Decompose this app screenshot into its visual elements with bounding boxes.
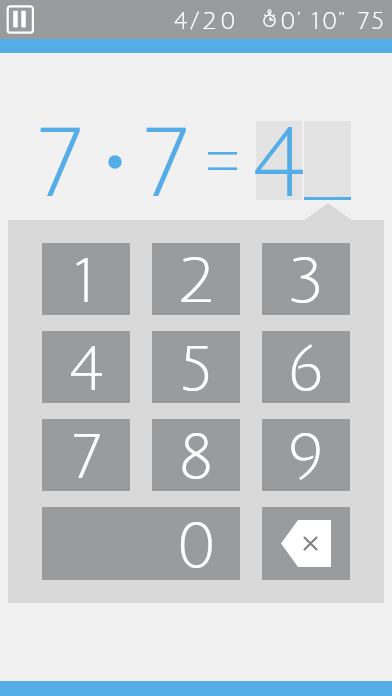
staticText: 7 (34, 113, 83, 218)
staticText: 4/20 (174, 8, 239, 34)
staticText: 1 (76, 248, 96, 316)
staticText: 3 (288, 248, 325, 316)
button[interactable]: 4 (42, 331, 130, 403)
staticText: 7 (140, 113, 189, 218)
button[interactable]: 9 (262, 419, 350, 491)
button[interactable]: Backspace (262, 507, 350, 580)
staticText: 7 (70, 424, 102, 492)
staticText: 6 (287, 336, 325, 404)
staticText: 2 (177, 248, 216, 316)
button[interactable]: 6 (262, 331, 350, 403)
staticText: 5 (179, 336, 214, 404)
button[interactable]: 5 (152, 331, 240, 403)
staticText: 9 (287, 424, 325, 492)
button[interactable]: 2 (152, 243, 240, 315)
staticText: 4 (252, 113, 305, 218)
button[interactable]: 8 (152, 419, 240, 491)
button[interactable]: 3 (262, 243, 350, 315)
staticText: 4 (69, 336, 103, 404)
staticText: 0 (176, 513, 217, 581)
button[interactable]: Pause (6, 5, 35, 34)
button[interactable]: 7 (42, 419, 130, 491)
button[interactable]: 1 (42, 243, 130, 315)
staticText: 0’ 10” 75 (280, 8, 387, 34)
staticText: 8 (178, 424, 214, 492)
button[interactable]: 0 (42, 507, 240, 580)
